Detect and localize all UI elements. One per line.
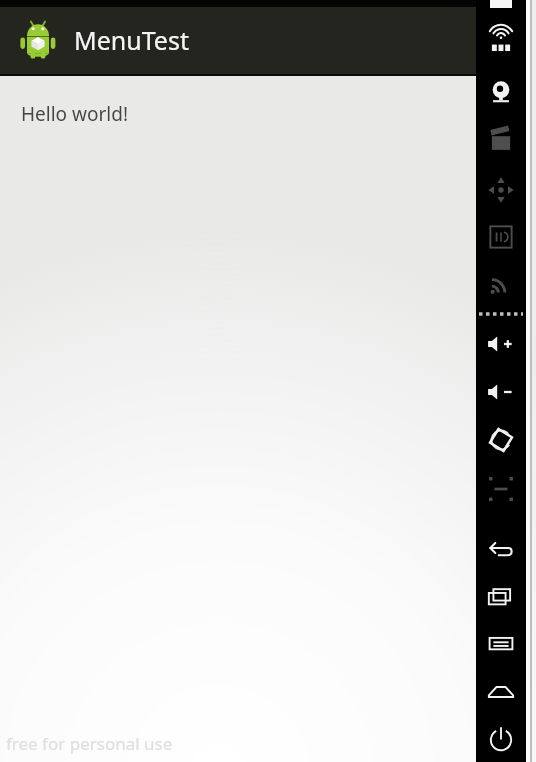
- staticText: MenuTest: [74, 23, 189, 57]
- staticText: Hello world!: [21, 101, 129, 127]
- button[interactable]: Emulator control: [482, 373, 520, 411]
- button[interactable]: App icon: [0, 7, 476, 74]
- button[interactable]: Emulator control: [482, 673, 520, 711]
- button[interactable]: Emulator control: [482, 171, 520, 209]
- button[interactable]: Emulator control: [482, 218, 520, 256]
- button[interactable]: Emulator control: [482, 421, 520, 459]
- button[interactable]: Emulator control: [482, 470, 520, 508]
- button[interactable]: Emulator control: [482, 121, 520, 159]
- button[interactable]: Emulator control: [482, 266, 520, 304]
- button[interactable]: Emulator control: [482, 325, 520, 363]
- button[interactable]: Emulator control: [482, 73, 520, 111]
- staticText: free for personal use: [6, 732, 173, 755]
- button[interactable]: Emulator control: [482, 721, 520, 759]
- other: App icon: [16, 19, 60, 63]
- button[interactable]: Emulator control: [482, 577, 520, 615]
- button[interactable]: Emulator control: [482, 529, 520, 567]
- button[interactable]: Emulator control: [482, 625, 520, 663]
- button[interactable]: Emulator control: [482, 21, 520, 59]
